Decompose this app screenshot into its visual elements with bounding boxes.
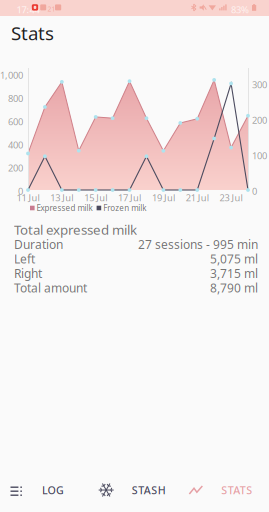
staticText: Left <box>14 251 35 267</box>
staticText: LOG <box>42 483 64 497</box>
staticText: Total amount <box>14 280 87 296</box>
staticText: 83% <box>231 3 249 16</box>
staticText: 0 <box>18 185 23 197</box>
staticText: 200 <box>252 114 267 126</box>
staticText: 21 <box>47 5 55 13</box>
staticText: 800 <box>8 92 23 105</box>
staticText: 300 <box>252 78 267 91</box>
staticText: Stats <box>11 21 54 45</box>
staticText: 100 <box>252 149 267 162</box>
staticText: 8,790 ml <box>210 280 258 296</box>
staticText: 27 sessions - 995 min <box>138 236 258 252</box>
staticText: 11 Jul <box>16 191 39 204</box>
staticText: 21 Jul <box>186 191 209 204</box>
button[interactable]: STASH <box>90 468 179 512</box>
staticText: Duration <box>14 236 63 252</box>
staticText: 17:44 <box>16 3 39 16</box>
staticText: 600 <box>8 115 23 128</box>
staticText: 15 Jul <box>84 191 107 204</box>
staticText: Total expressed milk <box>14 221 137 238</box>
button[interactable]: STATS <box>179 468 269 512</box>
staticText: 17 Jul <box>118 191 141 204</box>
staticText: 19 Jul <box>152 191 175 204</box>
staticText: 23 Jul <box>220 191 243 204</box>
button[interactable]: LOG <box>0 468 90 512</box>
staticText: 5,075 ml <box>210 251 258 267</box>
staticText: STASH <box>132 483 166 497</box>
staticText: 3,715 ml <box>210 265 258 281</box>
staticText: Frozen milk <box>103 203 146 213</box>
staticText: 200 <box>8 162 23 174</box>
staticText: 400 <box>8 139 23 151</box>
staticText: STATS <box>221 483 252 497</box>
staticText: 13 Jul <box>50 191 73 204</box>
staticText: Expressed milk <box>37 203 93 213</box>
staticText: Right <box>14 265 42 281</box>
staticText: 1,000 <box>0 69 23 81</box>
staticText: 0 <box>252 185 257 197</box>
